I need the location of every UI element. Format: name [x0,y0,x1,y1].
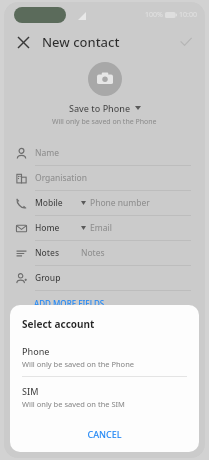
staticText: Mobile [35,197,63,209]
button[interactable]: Group [4,266,205,291]
staticText: Select account [22,317,95,331]
button[interactable]: Notes [4,241,205,266]
button[interactable]: ADD MORE FIELDS [34,295,105,312]
staticText: Will only be saved on the SIM [22,399,125,409]
button[interactable]: Save [175,31,197,53]
button[interactable]: Mobile [4,191,205,216]
button[interactable]: Home [4,216,205,241]
staticText: Group [35,272,61,284]
staticText: Notes [81,247,105,259]
button[interactable]: Add photo [88,62,122,96]
staticText: Organisation [35,172,88,184]
button[interactable]: CANCEL [77,424,132,444]
staticText: Save to Phone [69,102,131,114]
staticText: Notes [35,247,60,259]
staticText: Name [35,147,59,159]
staticText: 10:00 [179,10,197,20]
staticText: Will only be saved on the Phone [22,359,135,369]
staticText: CANCEL [87,428,122,440]
staticText: Email [90,222,112,234]
button[interactable]: Organisation [4,166,205,191]
staticText: Home [35,222,60,234]
staticText: 100% [145,10,163,20]
button[interactable]: Phone [22,345,187,376]
button[interactable]: Name [4,141,205,166]
staticText: Phone [22,345,50,357]
button[interactable]: Close [12,31,34,53]
button[interactable]: SIM [22,385,187,416]
staticText: SIM [22,385,39,397]
button[interactable]: Save to Phone [69,102,141,114]
staticText: Will only be saved on the Phone [52,117,157,127]
staticText: Phone number [90,197,150,209]
staticText: ADD MORE FIELDS [34,298,105,309]
staticText: New contact [42,33,120,51]
